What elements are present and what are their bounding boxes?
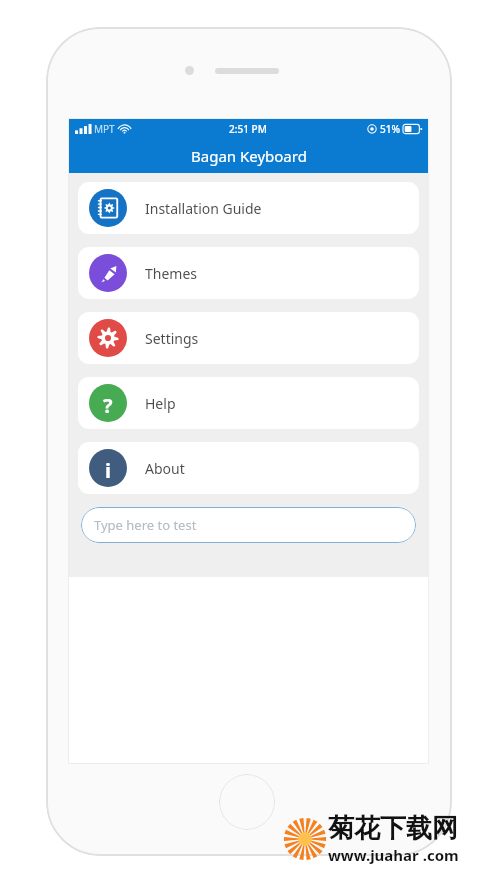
staticText: MPT <box>94 122 115 136</box>
staticText: Themes <box>145 264 198 283</box>
staticText: i <box>105 457 111 479</box>
staticText: Type here to test <box>94 516 197 534</box>
button[interactable]: Themes <box>78 247 419 299</box>
staticText: Help <box>145 394 176 413</box>
staticText: 菊花下载网 <box>328 812 458 845</box>
button[interactable]: ? <box>78 377 419 429</box>
staticText: 2:51 PM <box>229 122 267 136</box>
staticText: Bagan Keyboard <box>191 146 307 166</box>
staticText: www.juahar .com <box>328 845 459 865</box>
button[interactable]: Installation Guide <box>78 182 419 234</box>
staticText: About <box>145 459 185 478</box>
staticText: Installation Guide <box>145 199 262 218</box>
button[interactable]: Settings <box>78 312 419 364</box>
button[interactable]: i <box>78 442 419 494</box>
staticText: ? <box>103 392 113 414</box>
staticText: 51% <box>380 122 400 136</box>
staticText: Settings <box>145 329 199 348</box>
button[interactable]: Type here to test <box>81 507 416 543</box>
